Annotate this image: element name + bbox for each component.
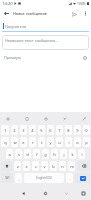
staticText: h: [53, 152, 56, 157]
button[interactable]: x: [23, 161, 30, 171]
staticText: m: [70, 164, 74, 169]
staticText: a: [8, 152, 11, 157]
button[interactable]: 5: [38, 125, 45, 135]
button[interactable]: u: [56, 137, 63, 147]
button[interactable]: Премиум: [0, 51, 91, 64]
button[interactable]: e: [20, 137, 27, 147]
staticText: .: [69, 176, 71, 181]
button[interactable]: Back: [0, 7, 13, 20]
staticText: i: [68, 140, 70, 145]
button[interactable]: o: [74, 137, 81, 147]
button[interactable]: Enter: [75, 173, 90, 183]
button[interactable]: v: [41, 161, 48, 171]
button[interactable]: 4: [29, 125, 36, 135]
button[interactable]: 0: [83, 125, 90, 135]
button[interactable]: b: [50, 161, 57, 171]
button[interactable]: Clipboard: [22, 114, 31, 123]
staticText: e: [22, 140, 25, 145]
button[interactable]: Back: [18, 188, 28, 198]
staticText: 0: [85, 128, 88, 133]
button[interactable]: l: [78, 149, 85, 159]
button[interactable]: n: [59, 161, 66, 171]
button[interactable]: GIF: [60, 114, 69, 123]
button[interactable]: Hide keyboard: [61, 188, 71, 198]
staticText: s: [18, 152, 20, 157]
staticText: Новое сообщение: [13, 11, 47, 16]
staticText: 9: [76, 128, 79, 133]
staticText: 2: [13, 128, 16, 133]
button[interactable]: t: [38, 137, 45, 147]
staticText: Премиум: [4, 55, 21, 60]
button[interactable]: !#1: [1, 173, 13, 183]
button[interactable]: q: [1, 137, 9, 147]
button[interactable]: Settings: [3, 114, 12, 123]
staticText: u: [58, 140, 61, 145]
button[interactable]: 6: [47, 125, 54, 135]
button[interactable]: Theme: [79, 114, 88, 123]
staticText: t: [41, 140, 43, 145]
staticText: x: [25, 164, 28, 169]
button[interactable]: Backspace: [77, 161, 90, 171]
button[interactable]: i: [65, 137, 72, 147]
staticText: 6: [49, 128, 52, 133]
staticText: !#1: [5, 176, 10, 180]
button[interactable]: y: [47, 137, 54, 147]
staticText: 7: [58, 128, 61, 133]
staticText: k: [71, 152, 74, 157]
button[interactable]: r: [29, 137, 36, 147]
button[interactable]: More options: [80, 8, 91, 19]
button[interactable]: z: [14, 161, 21, 171]
button[interactable]: s: [15, 149, 22, 159]
button[interactable]: f: [33, 149, 40, 159]
staticText: English(US): [36, 176, 52, 180]
staticText: r: [32, 140, 34, 145]
button[interactable]: 2: [11, 125, 18, 135]
button[interactable]: Recents: [78, 188, 88, 198]
button[interactable]: Напишите текст сообщения...: [2, 35, 89, 50]
staticText: g: [44, 152, 47, 157]
staticText: ,: [18, 176, 20, 181]
button[interactable]: g: [42, 149, 49, 159]
staticText: 1: [4, 128, 7, 133]
button[interactable]: Sticker: [41, 114, 50, 123]
button[interactable]: c: [32, 161, 39, 171]
button[interactable]: Space: [24, 173, 64, 183]
button[interactable]: k: [69, 149, 76, 159]
button[interactable]: p: [83, 137, 90, 147]
button[interactable]: 9: [74, 125, 81, 135]
button[interactable]: 1: [1, 125, 9, 135]
staticText: 100%: [77, 1, 86, 6]
button[interactable]: Home: [40, 188, 50, 198]
staticText: 14:20: [2, 1, 13, 7]
staticText: z: [17, 164, 19, 169]
button[interactable]: ,: [15, 173, 22, 183]
staticText: 5: [40, 128, 43, 133]
staticText: Напишите текст сообщения...: [5, 38, 59, 43]
staticText: 3: [22, 128, 25, 133]
staticText: Получатели: [5, 24, 27, 29]
staticText: w: [13, 140, 17, 145]
staticText: o: [76, 140, 79, 145]
button[interactable]: Send: [68, 8, 80, 20]
staticText: n: [61, 164, 64, 169]
staticText: 4: [31, 128, 34, 133]
button[interactable]: m: [68, 161, 75, 171]
button[interactable]: w: [11, 137, 18, 147]
staticText: 8: [67, 128, 70, 133]
button[interactable]: 7: [56, 125, 63, 135]
staticText: j: [63, 152, 65, 157]
staticText: d: [26, 152, 29, 157]
staticText: c: [35, 164, 37, 169]
button[interactable]: Shift: [1, 161, 12, 171]
staticText: p: [85, 140, 88, 145]
button[interactable]: h: [51, 149, 58, 159]
button[interactable]: 3: [20, 125, 27, 135]
button[interactable]: Получатели: [0, 20, 91, 31]
button[interactable]: d: [24, 149, 31, 159]
button[interactable]: j: [60, 149, 67, 159]
staticText: v: [43, 164, 46, 169]
staticText: b: [52, 164, 55, 169]
button[interactable]: 8: [65, 125, 72, 135]
button[interactable]: a: [6, 149, 13, 159]
